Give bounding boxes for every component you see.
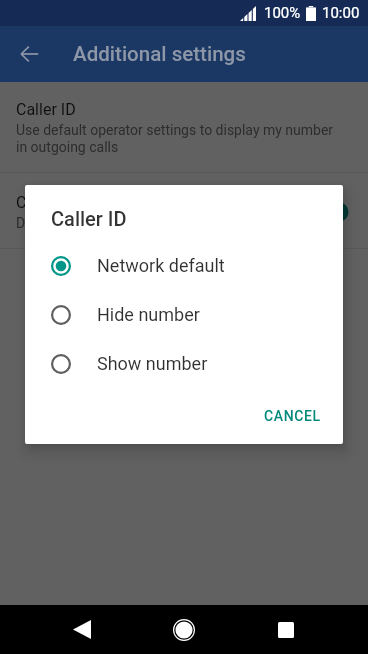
staticText: CANCEL xyxy=(264,408,321,424)
button[interactable]: Back xyxy=(57,605,106,654)
staticText: Call waiting xyxy=(16,193,99,212)
button[interactable]: Show number xyxy=(25,339,343,388)
staticText: Show number xyxy=(97,353,208,374)
button[interactable]: Home xyxy=(158,605,210,654)
button[interactable]: Navigate up xyxy=(12,34,52,74)
staticText: Caller ID xyxy=(51,207,127,230)
staticText: Use default operator settings to display… xyxy=(16,122,334,156)
button[interactable]: Hide number xyxy=(25,290,343,339)
staticText: Additional settings xyxy=(73,42,246,66)
button[interactable]: Caller ID xyxy=(0,82,368,172)
staticText: Network default xyxy=(97,255,225,276)
button[interactable]: Recent apps xyxy=(260,605,312,654)
staticText: 100% xyxy=(264,4,301,22)
staticText: Caller ID xyxy=(16,100,76,119)
staticText: Hide number xyxy=(97,304,200,325)
button[interactable]: Call waiting xyxy=(0,173,368,248)
button[interactable]: CANCEL xyxy=(256,402,329,430)
button[interactable]: Network default xyxy=(25,241,343,290)
staticText: 10:00 xyxy=(322,4,360,22)
staticText: During a call, notify me of incoming cal… xyxy=(16,215,268,231)
